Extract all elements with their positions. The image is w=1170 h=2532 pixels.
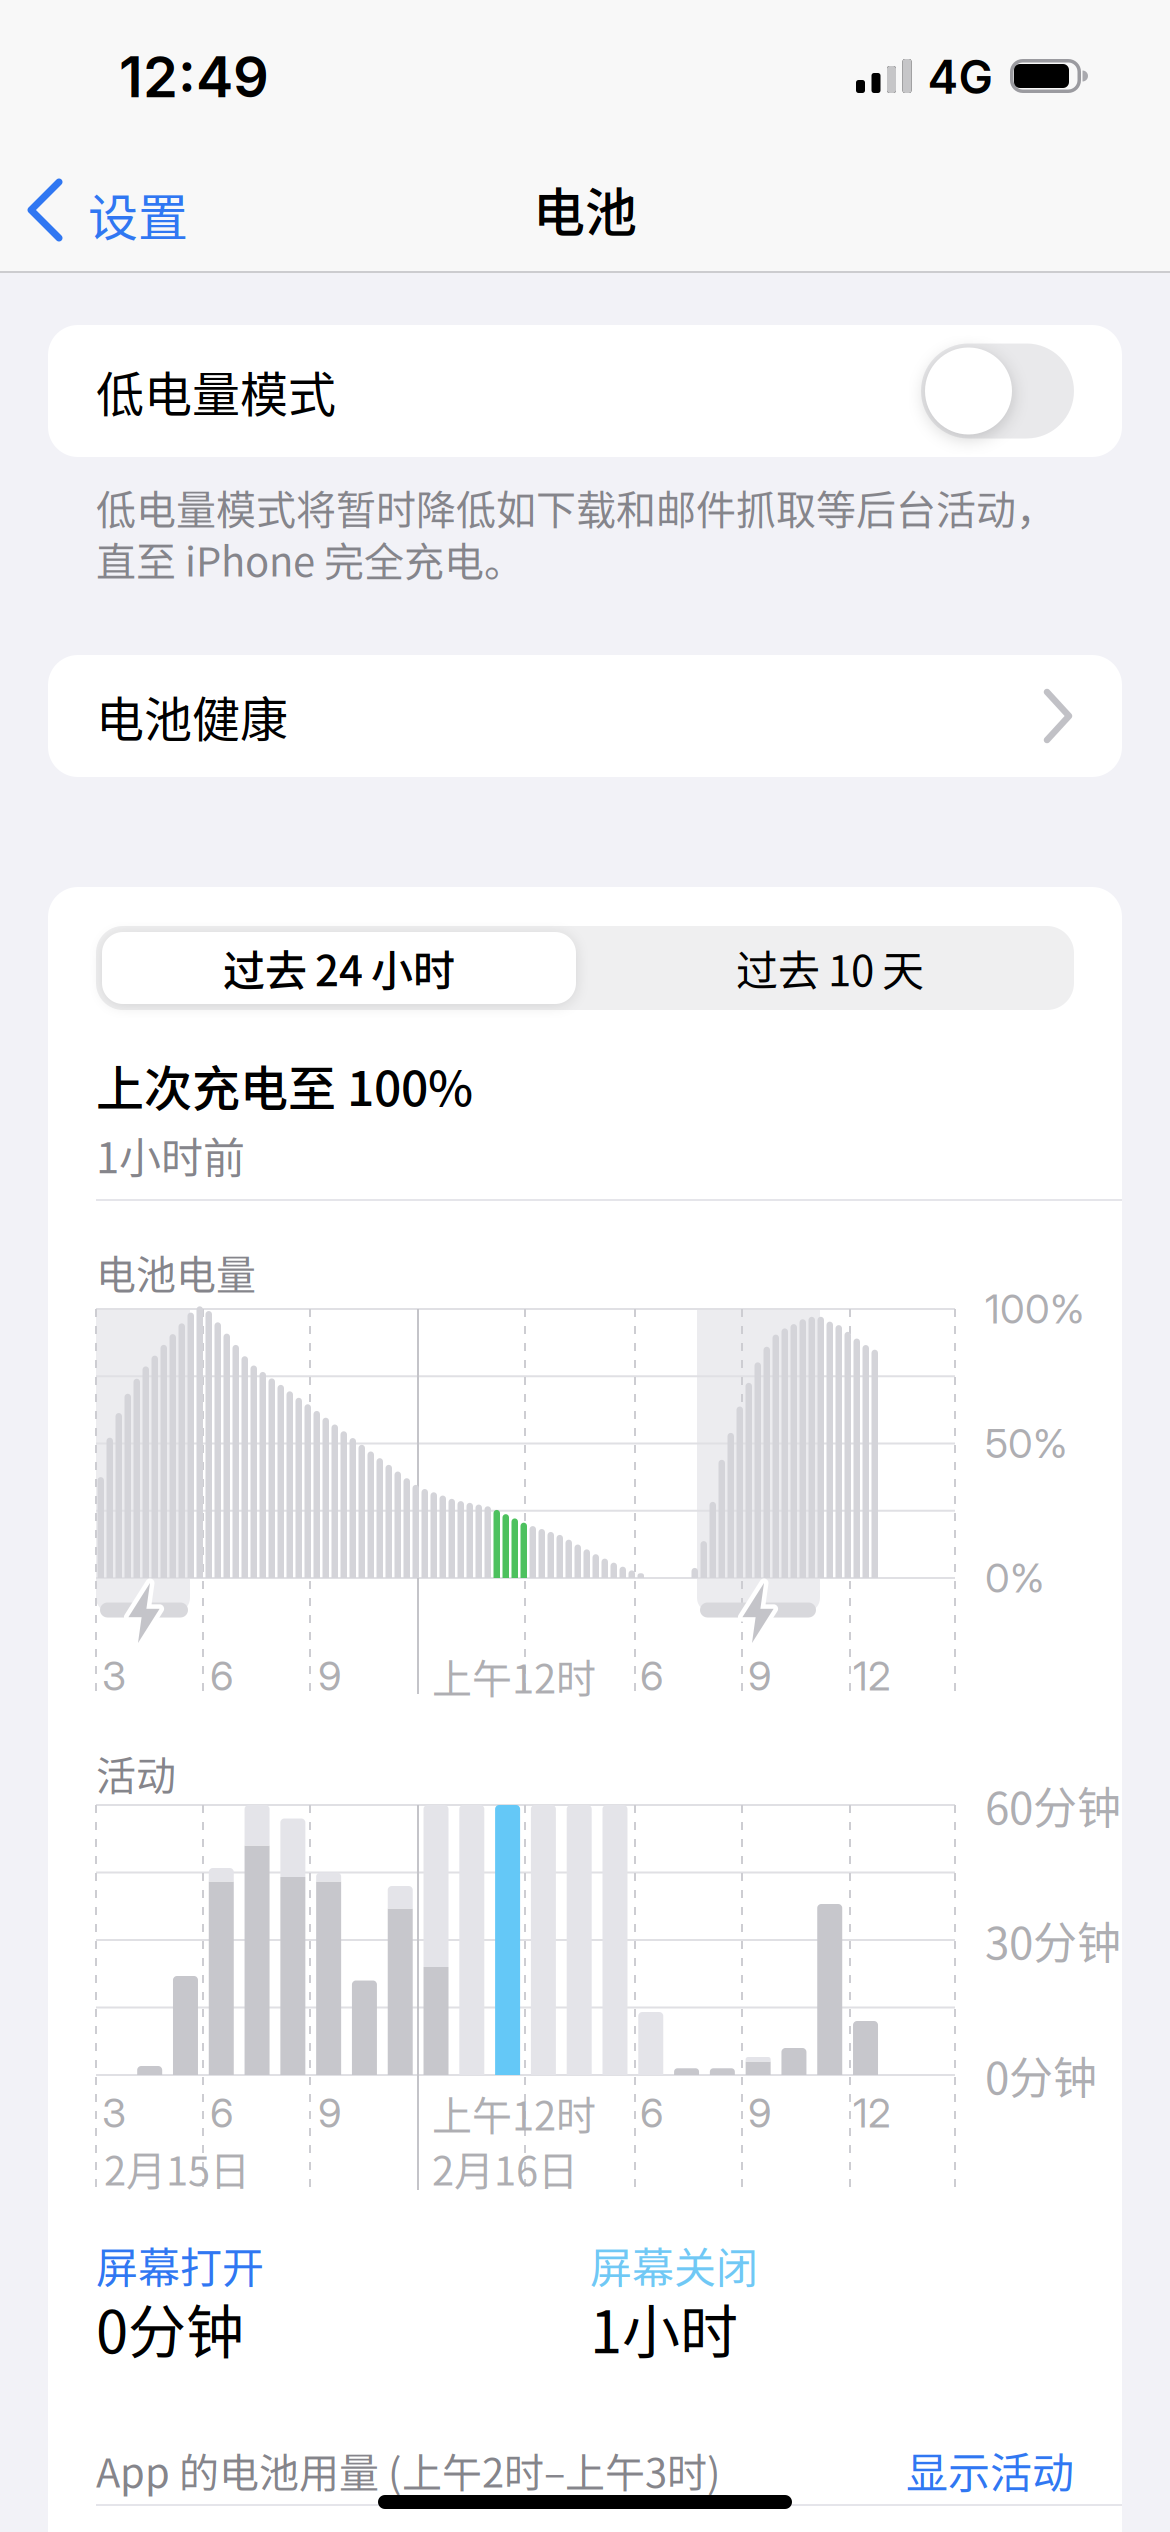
staticText: 4G bbox=[927, 49, 992, 105]
staticText: 电池 bbox=[533, 171, 637, 247]
button[interactable]: 过去 10 天 bbox=[593, 932, 1067, 1004]
staticText: 上午12时 bbox=[432, 1647, 596, 1705]
staticText: 12:49 bbox=[119, 43, 269, 111]
staticText: 9 bbox=[318, 2089, 342, 2137]
button[interactable]: 显示活动 bbox=[906, 2440, 1074, 2500]
staticText: App 的电池用量 (上午2时–上午3时) bbox=[96, 2441, 721, 2499]
staticText: 电池健康 bbox=[96, 681, 288, 751]
staticText: 3 bbox=[102, 2089, 126, 2137]
staticText: 6 bbox=[640, 2089, 664, 2137]
staticText: 12 bbox=[853, 2089, 891, 2137]
staticText: 6 bbox=[210, 2089, 234, 2137]
staticText: 屏幕关闭 bbox=[590, 2235, 758, 2295]
staticText: 低电量模式 bbox=[96, 356, 336, 426]
staticText: 1小时前 bbox=[96, 1125, 245, 1185]
staticText: 2月16日 bbox=[432, 2139, 578, 2197]
staticText: 6 bbox=[640, 1652, 664, 1700]
staticText: 屏幕打开 bbox=[96, 2235, 264, 2295]
staticText: 12 bbox=[853, 1652, 891, 1700]
staticText: 设置 bbox=[88, 178, 188, 250]
staticText: 0分钟 bbox=[985, 2043, 1097, 2107]
staticText: 6 bbox=[210, 1652, 234, 1700]
staticText: 活动 bbox=[96, 1744, 176, 1802]
staticText: 9 bbox=[318, 1652, 342, 1700]
staticText: 30分钟 bbox=[985, 1908, 1121, 1972]
staticText: 低电量模式将暂时降低如下载和邮件抓取等后台活动， bbox=[96, 478, 1056, 536]
staticText: 50% bbox=[985, 1419, 1067, 1468]
staticText: 0分钟 bbox=[96, 2286, 244, 2370]
staticText: 9 bbox=[748, 1652, 772, 1700]
button[interactable]: 电池健康 bbox=[48, 655, 1122, 777]
button[interactable]: 低电量模式 bbox=[921, 343, 1074, 438]
staticText: 上次充电至 100% bbox=[96, 1050, 473, 1120]
staticText: 60分钟 bbox=[985, 1773, 1121, 1837]
staticText: 上午12时 bbox=[432, 2084, 596, 2142]
staticText: 电池电量 bbox=[96, 1243, 256, 1301]
staticText: 2月15日 bbox=[104, 2139, 250, 2197]
staticText: 0% bbox=[985, 1554, 1044, 1602]
staticText: 3 bbox=[102, 1652, 126, 1700]
staticText: 9 bbox=[748, 2089, 772, 2137]
staticText: 过去 24 小时 bbox=[223, 938, 455, 998]
staticText: 100% bbox=[985, 1285, 1084, 1333]
staticText: 显示活动 bbox=[906, 2440, 1074, 2500]
button[interactable]: 过去 24 小时 bbox=[102, 932, 576, 1004]
staticText: 直至 iPhone 完全充电。 bbox=[96, 530, 524, 588]
staticText: 1小时 bbox=[590, 2286, 738, 2370]
staticText: 过去 10 天 bbox=[736, 938, 924, 998]
button[interactable]: 设置 bbox=[0, 168, 230, 258]
